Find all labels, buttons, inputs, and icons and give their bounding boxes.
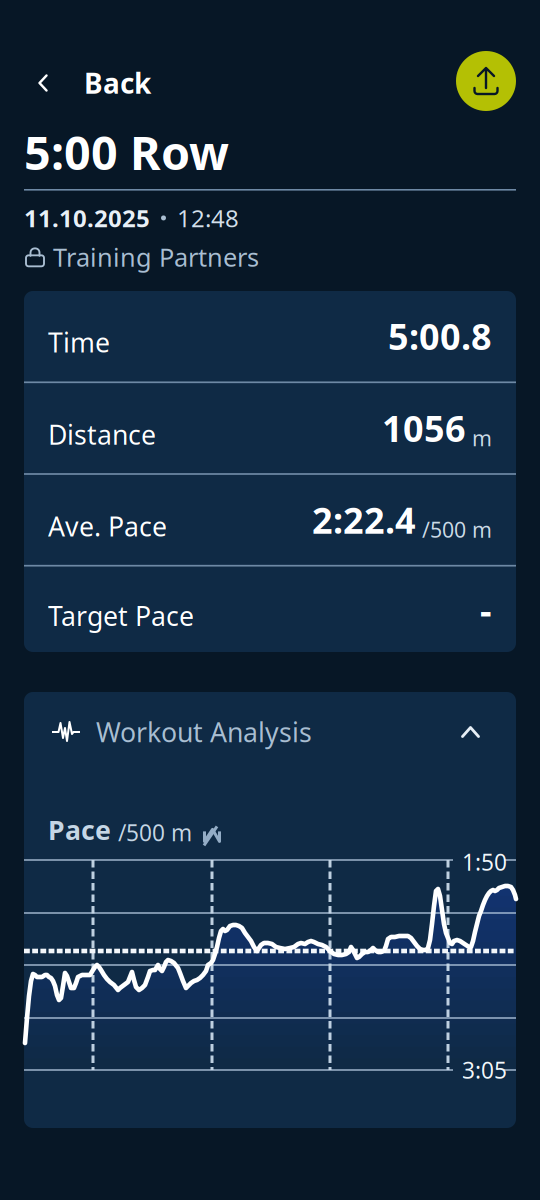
button[interactable]: Back xyxy=(18,57,171,109)
staticText: - xyxy=(480,586,492,633)
staticText: Pace xyxy=(48,812,111,847)
staticText: 11.10.2025 xyxy=(24,202,150,234)
staticText: Time xyxy=(48,324,110,360)
staticText: 12:48 xyxy=(177,202,239,234)
staticText: 3:05 xyxy=(462,1055,507,1085)
button[interactable]: Share xyxy=(456,51,516,111)
button[interactable]: Workout Analysis xyxy=(24,694,516,770)
staticText: 1:50 xyxy=(462,847,507,877)
staticText: 1056 xyxy=(382,404,466,452)
staticText: Distance xyxy=(48,417,156,452)
staticText: Workout Analysis xyxy=(96,714,312,750)
staticText: 2:22.4 xyxy=(312,496,416,544)
staticText: 5:00.8 xyxy=(388,312,492,360)
staticText: /500 m xyxy=(118,817,192,847)
staticText: Training Partners xyxy=(53,240,259,274)
staticText: 5:00 Row xyxy=(24,121,229,183)
staticText: Target Pace xyxy=(48,598,194,633)
staticText: m xyxy=(472,424,492,452)
staticText: Ave. Pace xyxy=(48,508,167,544)
staticText: /500 m xyxy=(422,515,492,544)
staticText: Back xyxy=(84,64,151,102)
